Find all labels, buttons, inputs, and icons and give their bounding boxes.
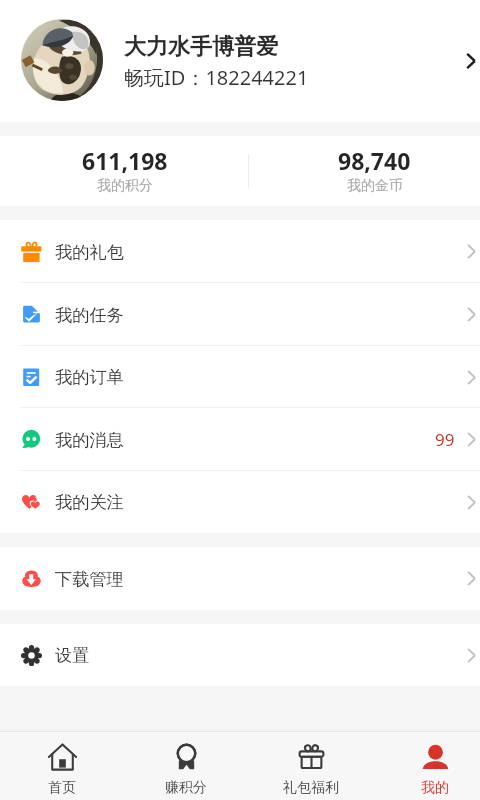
button[interactable]: 我的订单 bbox=[0, 346, 480, 408]
staticText: 大力水手博普爱 bbox=[124, 33, 278, 61]
button[interactable]: 611,198 bbox=[0, 136, 240, 206]
button[interactable]: 我的礼包 bbox=[0, 220, 480, 283]
button[interactable]: 设置 bbox=[0, 624, 480, 686]
staticText: 下载管理 bbox=[55, 568, 124, 590]
staticText: 我的关注 bbox=[55, 491, 124, 513]
staticText: 礼包福利 bbox=[283, 779, 339, 797]
button[interactable]: 98,740 bbox=[240, 136, 480, 206]
button[interactable]: 赚积分 bbox=[124, 732, 248, 800]
button[interactable]: 下载管理 bbox=[0, 547, 480, 610]
staticText: 畅玩ID：182244221 bbox=[124, 64, 309, 91]
button[interactable]: 首页 bbox=[0, 732, 124, 800]
button[interactable]: 我的关注 bbox=[0, 471, 480, 533]
staticText: 我的订单 bbox=[55, 366, 124, 388]
staticText: 98,740 bbox=[338, 145, 411, 176]
staticText: 首页 bbox=[48, 779, 76, 797]
button[interactable]: 我的任务 bbox=[0, 283, 480, 346]
button[interactable]: 我的 bbox=[373, 732, 480, 800]
staticText: 611,198 bbox=[82, 145, 168, 176]
staticText: 我的礼包 bbox=[55, 241, 124, 263]
button[interactable]: 大力水手博普爱 bbox=[0, 0, 480, 122]
staticText: 我的 bbox=[421, 779, 449, 797]
staticText: 我的积分 bbox=[97, 177, 153, 195]
staticText: 我的任务 bbox=[55, 304, 124, 326]
staticText: 赚积分 bbox=[165, 779, 207, 797]
staticText: 我的金币 bbox=[347, 177, 403, 195]
staticText: 99 bbox=[435, 428, 455, 451]
button[interactable]: 礼包福利 bbox=[249, 732, 373, 800]
button[interactable]: 我的消息 bbox=[0, 408, 480, 471]
staticText: 设置 bbox=[55, 644, 90, 666]
staticText: 我的消息 bbox=[55, 429, 124, 451]
